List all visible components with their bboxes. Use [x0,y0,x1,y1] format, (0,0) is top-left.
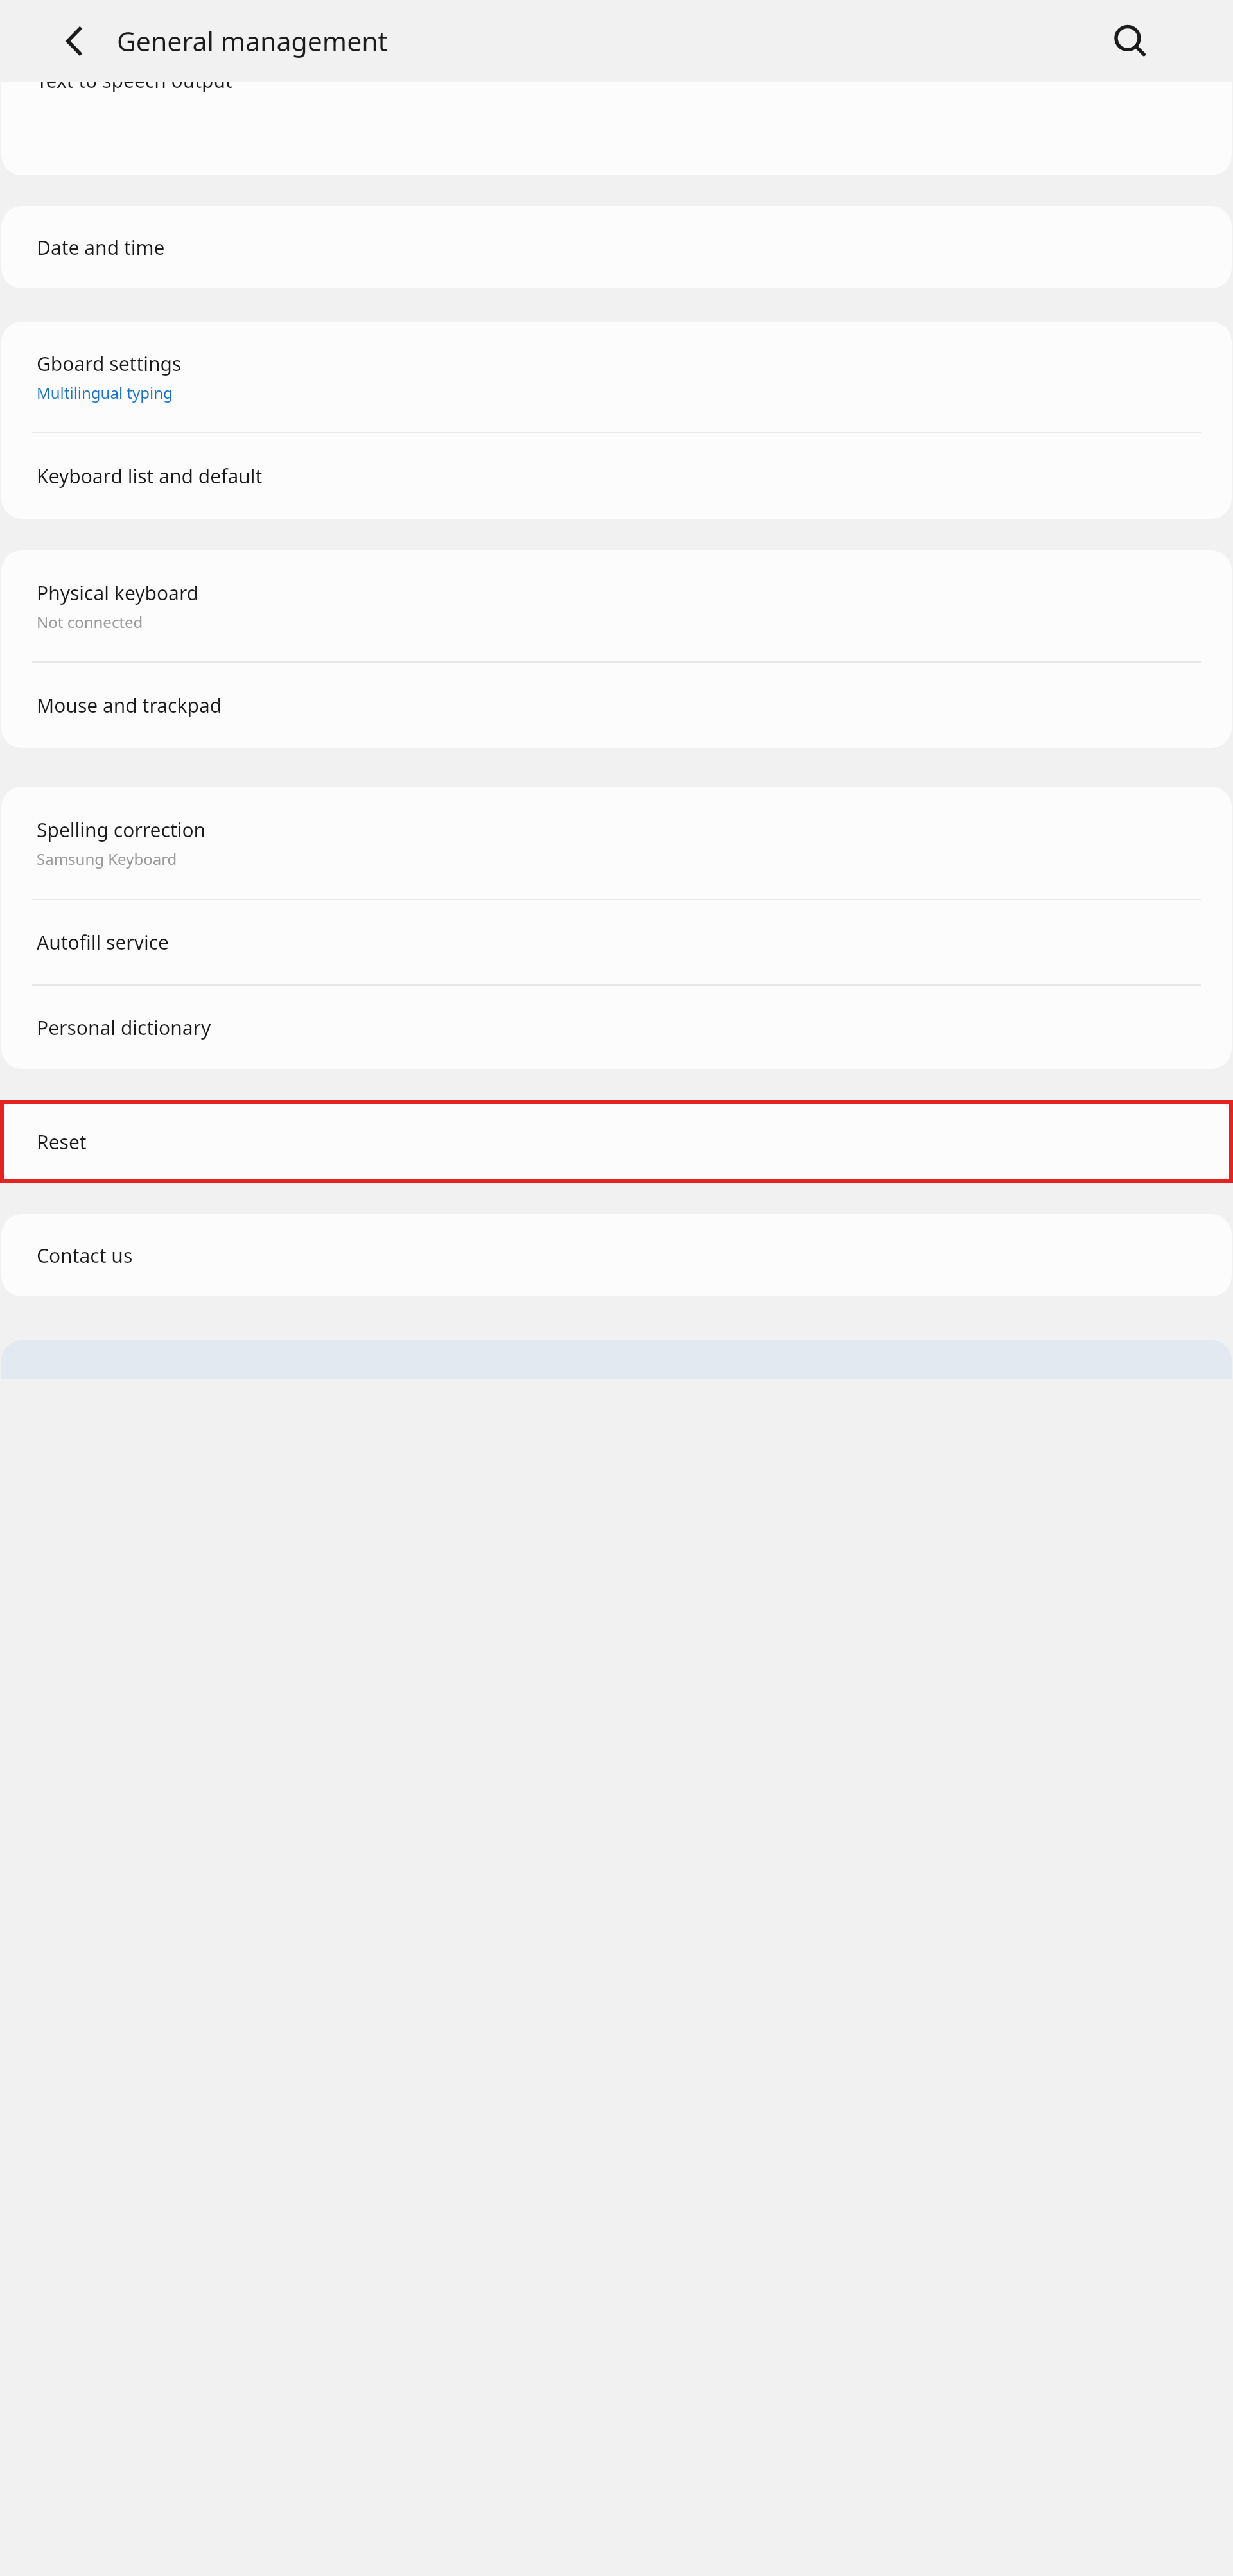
button[interactable]: Date and time [1,206,1232,288]
button[interactable]: Physical keyboard [1,550,1232,661]
staticText: Gboard settings [37,351,182,377]
button[interactable]: Spelling correction [1,787,1232,899]
staticText: Reset [37,1129,87,1155]
button[interactable]: Text to speech output [1,82,1232,175]
button[interactable]: Gboard settings [1,322,1232,432]
staticText: Date and time [37,234,165,261]
staticText: Samsung Keyboard [37,848,177,869]
staticText: Personal dictionary [37,1014,211,1041]
button[interactable]: Keyboard list and default [1,433,1232,519]
button[interactable]: Autofill service [1,900,1232,984]
button[interactable]: Back [50,17,99,65]
staticText: General management [117,23,388,59]
staticText: Not connected [37,611,143,632]
staticText: Keyboard list and default [37,463,263,489]
button[interactable]: Reset [1,1100,1232,1183]
staticText: Contact us [37,1242,133,1269]
staticText: Physical keyboard [37,580,199,606]
staticText: Text to speech output [37,82,232,94]
button[interactable]: Contact us [1,1214,1232,1296]
staticText: Autofill service [37,929,170,955]
button[interactable]: Search [1103,14,1157,68]
button[interactable]: Personal dictionary [1,986,1232,1069]
button[interactable]: Mouse and trackpad [1,663,1232,748]
staticText: Mouse and trackpad [37,692,222,718]
staticText: Multilingual typing [37,382,173,403]
staticText: Spelling correction [37,817,206,843]
